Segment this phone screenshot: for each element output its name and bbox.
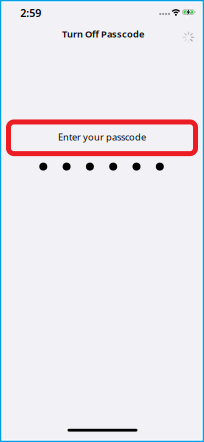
staticText: Enter your passcode [58,131,146,143]
button[interactable]: Enter your passcode [8,122,195,154]
staticText: 2:59 [20,6,41,20]
staticText: Turn Off Passcode [62,28,144,40]
